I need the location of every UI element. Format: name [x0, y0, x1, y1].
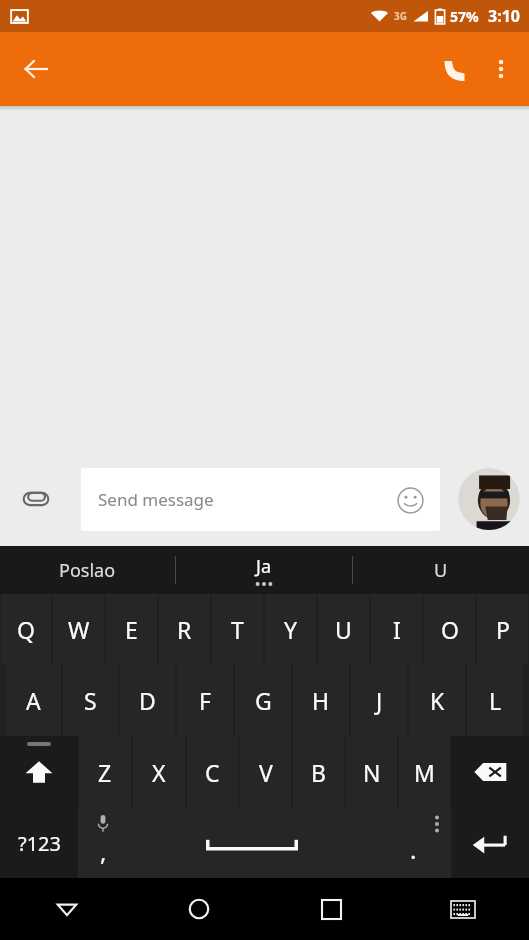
button[interactable]: Call	[431, 45, 479, 93]
staticText: U	[335, 614, 352, 645]
staticText: O	[441, 614, 459, 645]
button[interactable]: O	[424, 594, 475, 664]
button[interactable]: .	[375, 808, 451, 878]
staticText: 57%	[450, 7, 479, 26]
staticText: Y	[284, 614, 298, 645]
staticText: G	[255, 685, 272, 716]
staticText: P	[496, 614, 510, 645]
staticText: 3G	[394, 9, 407, 23]
staticText: C	[205, 757, 220, 788]
staticText: .	[410, 833, 417, 866]
staticText: T	[231, 614, 244, 645]
button[interactable]: Poslao	[0, 546, 175, 594]
button[interactable]: H	[293, 664, 349, 736]
button[interactable]: N	[346, 736, 397, 808]
button[interactable]: Emoji	[392, 482, 428, 518]
staticText: ?123	[18, 830, 61, 857]
staticText: L	[489, 685, 502, 716]
button[interactable]: S	[63, 664, 118, 736]
staticText: 3:10	[488, 5, 520, 27]
button[interactable]: J	[351, 664, 407, 736]
staticText: J	[376, 685, 383, 716]
button[interactable]: Q	[1, 594, 51, 664]
button[interactable]: More options	[479, 47, 523, 91]
button[interactable]: U	[353, 546, 529, 594]
button[interactable]: Backspace	[451, 736, 529, 808]
staticText: S	[84, 685, 97, 716]
button[interactable]: Z	[79, 736, 131, 808]
staticText: D	[139, 685, 156, 716]
staticText: N	[363, 757, 381, 788]
button[interactable]: Recent apps	[265, 878, 397, 940]
button[interactable]: Space	[128, 808, 375, 878]
button[interactable]: U	[318, 594, 369, 664]
button[interactable]: Home	[133, 878, 265, 940]
staticText: Send message	[98, 488, 214, 511]
staticText: Poslao	[59, 558, 116, 583]
staticText: W	[68, 614, 90, 645]
button[interactable]: R	[159, 594, 210, 664]
button[interactable]: B	[293, 736, 344, 808]
staticText: B	[311, 757, 326, 788]
staticText: X	[152, 757, 166, 788]
staticText: R	[177, 614, 192, 645]
staticText: U	[434, 558, 448, 583]
button[interactable]: Switch keyboard	[397, 878, 529, 940]
staticText: Q	[17, 614, 35, 645]
button[interactable]: Send message	[81, 468, 440, 531]
staticText: E	[125, 614, 138, 645]
button[interactable]: V	[240, 736, 291, 808]
staticText: Ja	[256, 554, 272, 579]
button[interactable]: C	[187, 736, 238, 808]
staticText: K	[430, 685, 445, 716]
button[interactable]: Ja	[176, 546, 352, 594]
button[interactable]: X	[133, 736, 185, 808]
staticText: A	[26, 685, 41, 716]
button[interactable]: Shift	[0, 736, 78, 808]
button[interactable]: T	[212, 594, 263, 664]
staticText: I	[393, 614, 401, 645]
staticText: F	[199, 685, 211, 716]
staticText: ,	[100, 835, 107, 868]
staticText: V	[259, 757, 273, 788]
button[interactable]: E	[106, 594, 157, 664]
button[interactable]: Y	[265, 594, 316, 664]
button[interactable]: M	[399, 736, 450, 808]
button[interactable]: Contact photo	[458, 468, 520, 530]
button[interactable]: Attach	[12, 475, 60, 523]
staticText: Z	[98, 757, 112, 788]
button[interactable]: W	[53, 594, 104, 664]
staticText: M	[414, 757, 435, 788]
button[interactable]: Comma and voice input	[78, 808, 128, 878]
button[interactable]: P	[477, 594, 528, 664]
staticText: H	[312, 685, 330, 716]
button[interactable]: L	[467, 664, 523, 736]
button[interactable]: Back	[12, 45, 60, 93]
button[interactable]: A	[6, 664, 61, 736]
button[interactable]: F	[177, 664, 233, 736]
button[interactable]: K	[409, 664, 465, 736]
button[interactable]: D	[120, 664, 175, 736]
button[interactable]: ?123	[0, 808, 78, 878]
button[interactable]: I	[371, 594, 422, 664]
button[interactable]: G	[235, 664, 291, 736]
button[interactable]: Enter	[451, 808, 529, 878]
button[interactable]: Hide keyboard	[0, 878, 133, 940]
